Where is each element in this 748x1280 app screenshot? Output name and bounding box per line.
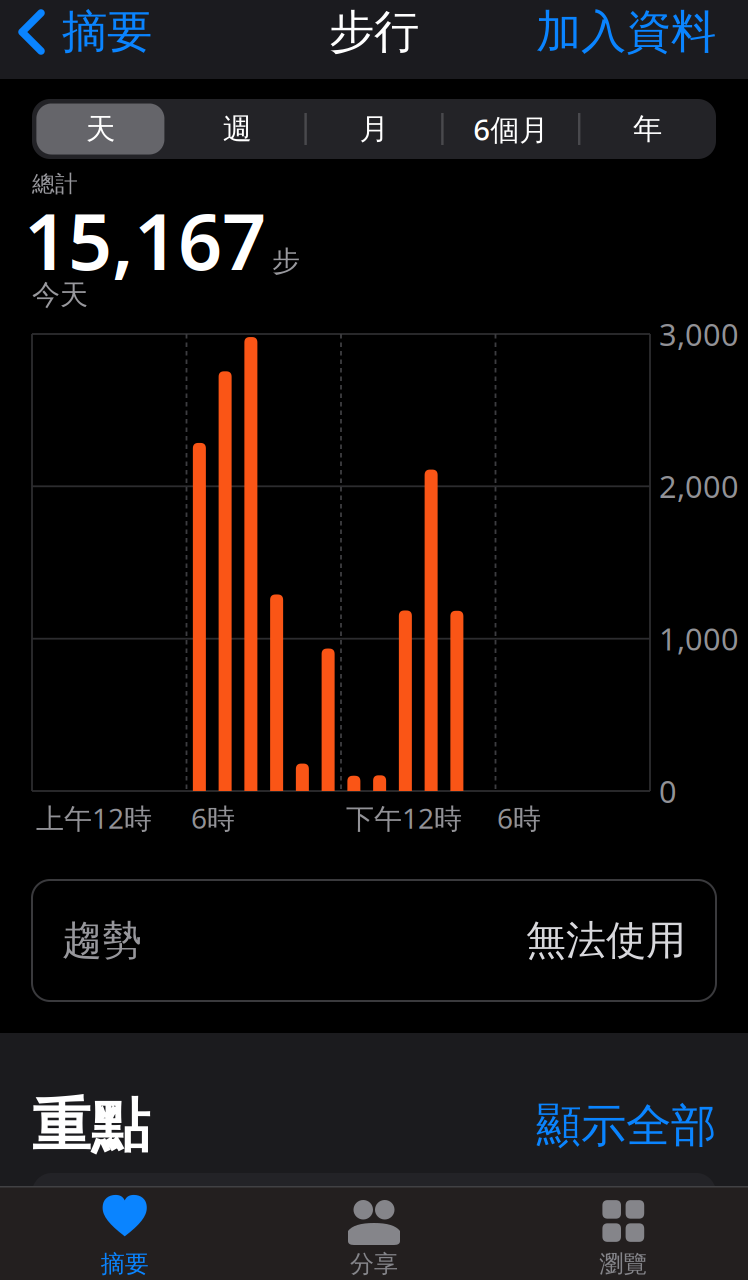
button[interactable]: 天: [36, 103, 164, 154]
staticText: 顯示全部: [536, 1098, 716, 1154]
button[interactable]: 摘要: [22, 4, 152, 60]
button[interactable]: 分享: [314, 1186, 434, 1280]
button[interactable]: 年: [584, 103, 712, 154]
staticText: 15,167: [24, 189, 266, 291]
button[interactable]: 重點卡片: [32, 1173, 716, 1280]
staticText: 分享: [350, 1249, 398, 1279]
button[interactable]: 摘要: [65, 1186, 185, 1280]
button[interactable]: 顯示全部: [416, 1098, 716, 1154]
button[interactable]: 加入資料: [416, 4, 716, 60]
button[interactable]: 週: [173, 103, 301, 154]
staticText: 0: [659, 771, 677, 811]
staticText: 總計: [32, 170, 78, 198]
button[interactable]: 月: [310, 103, 438, 154]
staticText: 步行: [329, 4, 419, 60]
staticText: 瀏覽: [599, 1249, 647, 1279]
staticText: 6時: [191, 799, 235, 837]
button[interactable]: 瀏覽: [563, 1186, 683, 1280]
staticText: 月: [359, 111, 388, 147]
staticText: 摘要: [101, 1249, 149, 1279]
staticText: 步: [272, 244, 300, 278]
staticText: 重點: [32, 1090, 150, 1162]
staticText: 天: [86, 111, 115, 147]
staticText: 今天: [32, 278, 88, 312]
staticText: 上午12時: [36, 799, 152, 837]
staticText: 加入資料: [536, 4, 716, 60]
staticText: 1,000: [659, 618, 739, 659]
staticText: 6時: [497, 799, 541, 837]
button[interactable]: 6個月: [447, 103, 575, 154]
staticText: 趨勢: [62, 916, 142, 965]
staticText: 6個月: [473, 109, 548, 148]
staticText: 年: [633, 111, 662, 147]
staticText: 摘要: [62, 4, 152, 60]
staticText: 3,000: [659, 314, 739, 354]
staticText: 下午12時: [346, 799, 462, 837]
staticText: 2,000: [659, 466, 739, 506]
staticText: 無法使用: [526, 916, 686, 965]
staticText: 週: [223, 111, 252, 147]
